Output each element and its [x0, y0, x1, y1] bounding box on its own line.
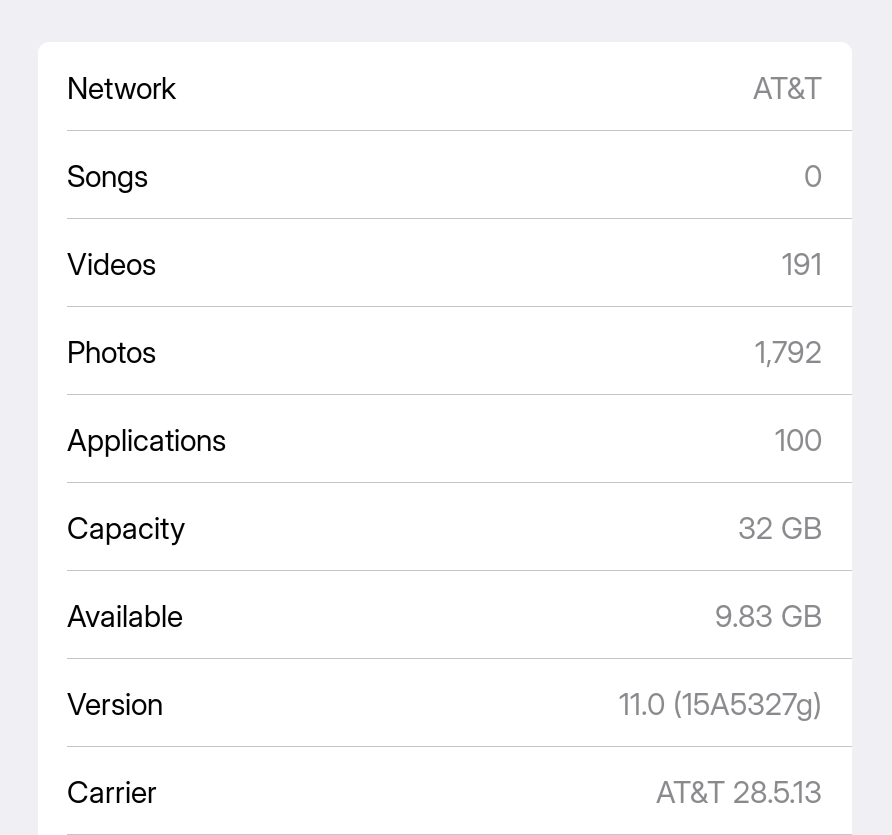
- button[interactable]: Available: [38, 571, 852, 658]
- staticText: AT&T 28.5.13: [656, 774, 822, 810]
- staticText: 9.83 GB: [715, 598, 822, 634]
- staticText: 0: [804, 158, 822, 194]
- staticText: Songs: [67, 158, 148, 194]
- staticText: Available: [67, 598, 183, 634]
- button[interactable]: Songs: [38, 131, 852, 218]
- staticText: 1,792: [755, 334, 822, 370]
- button[interactable]: Videos: [38, 219, 852, 306]
- staticText: 32 GB: [738, 510, 822, 546]
- staticText: 100: [775, 422, 822, 458]
- staticText: Videos: [67, 246, 156, 282]
- button[interactable]: Capacity: [38, 483, 852, 570]
- button[interactable]: Network: [38, 43, 852, 130]
- button[interactable]: Photos: [38, 307, 852, 394]
- staticText: Network: [67, 70, 176, 106]
- staticText: Photos: [67, 334, 156, 370]
- staticText: Version: [67, 686, 163, 722]
- button[interactable]: Version: [38, 659, 852, 746]
- staticText: Carrier: [67, 774, 157, 810]
- staticText: 11.0 (15A5327g): [619, 686, 822, 722]
- staticText: 191: [782, 246, 822, 282]
- staticText: AT&T: [753, 70, 822, 106]
- staticText: Capacity: [67, 510, 185, 546]
- button[interactable]: Carrier: [38, 747, 852, 834]
- staticText: Applications: [67, 422, 226, 458]
- button[interactable]: Applications: [38, 395, 852, 482]
